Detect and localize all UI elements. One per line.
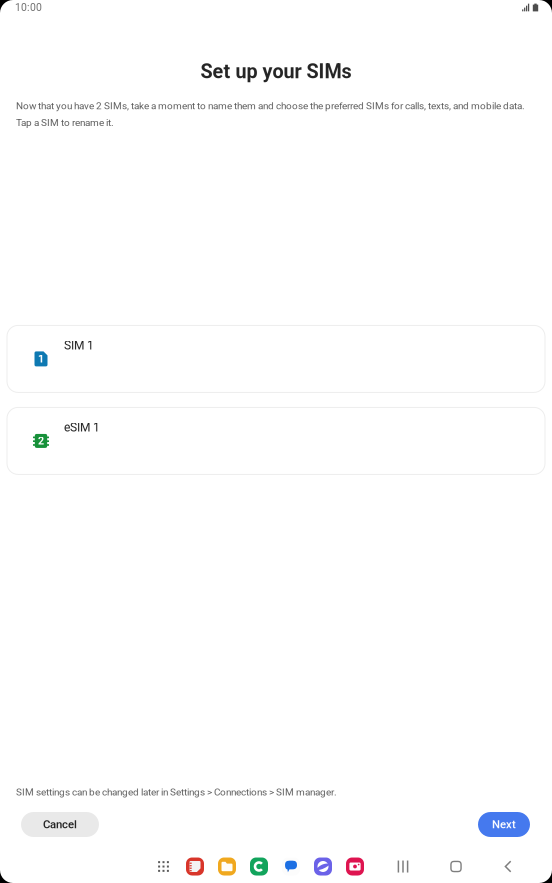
staticText: Now that you have 2 SIMs, take a moment …: [16, 100, 525, 112]
staticText: SIM 1: [64, 338, 94, 352]
button[interactable]: Home: [442, 853, 470, 879]
staticText: Next: [492, 818, 516, 831]
button[interactable]: Apps: [155, 853, 172, 879]
staticText: 10:00: [15, 1, 42, 14]
staticText: Cancel: [43, 818, 77, 831]
button[interactable]: Recents: [389, 853, 417, 879]
button[interactable]: Next: [478, 812, 530, 837]
button[interactable]: Camera: [346, 857, 364, 875]
button[interactable]: Samsung Notes: [186, 857, 204, 875]
staticText: 2: [38, 435, 44, 447]
button[interactable]: Back: [494, 853, 522, 879]
button[interactable]: Internet: [314, 857, 332, 875]
button[interactable]: Messages: [282, 857, 300, 875]
button[interactable]: Phone: [250, 857, 268, 875]
staticText: Set up your SIMs: [200, 60, 351, 83]
staticText: SIM settings can be changed later in Set…: [16, 786, 337, 798]
button[interactable]: 1: [7, 325, 545, 392]
staticText: 1: [38, 353, 44, 365]
button[interactable]: 2: [7, 407, 545, 474]
staticText: Tap a SIM to rename it.: [16, 117, 114, 128]
button[interactable]: My Files: [218, 857, 236, 875]
staticText: eSIM 1: [64, 420, 100, 434]
button[interactable]: Cancel: [21, 812, 99, 837]
